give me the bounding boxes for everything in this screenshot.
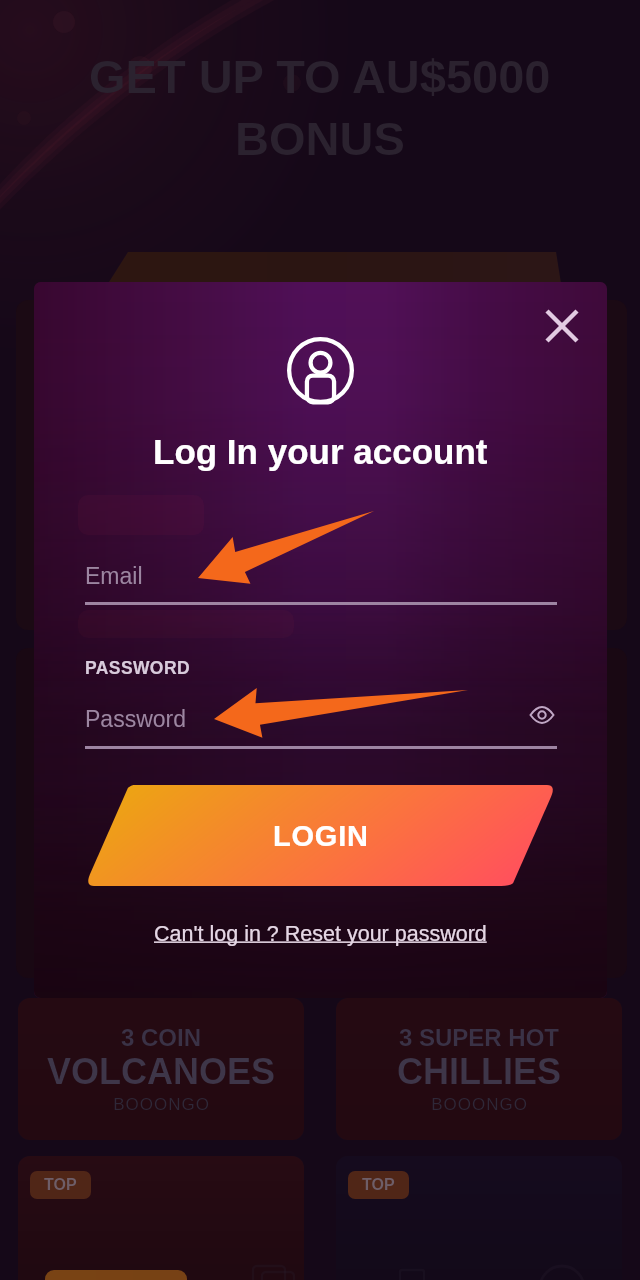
button[interactable]: LOGIN xyxy=(85,785,556,886)
staticText: 3 SUPER HOT xyxy=(399,1024,560,1051)
button[interactable]: TOP xyxy=(336,1156,622,1280)
staticText: Log In your account xyxy=(153,432,488,471)
staticText: TOP xyxy=(44,1176,77,1194)
button[interactable]: Can't log in ? Reset your password xyxy=(34,922,607,946)
staticText: LOGIN xyxy=(273,820,369,852)
staticText: Can't log in ? Reset your password xyxy=(154,922,487,946)
button[interactable]: Close xyxy=(531,295,593,357)
staticText: Email xyxy=(85,563,143,589)
staticText: PASSWORD xyxy=(85,658,190,678)
button[interactable]: Show password xyxy=(520,693,564,737)
staticText: VOLCANOES xyxy=(47,1051,276,1091)
staticText: Password xyxy=(85,706,186,732)
staticText: BONUS xyxy=(235,112,405,165)
button[interactable]: TOP xyxy=(18,1156,304,1280)
staticText: GET UP TO AU$5000 xyxy=(89,50,551,103)
staticText: TOP xyxy=(362,1176,395,1194)
staticText: BOOONGO xyxy=(113,1095,210,1114)
button[interactable]: 3 COIN xyxy=(18,998,304,1140)
staticText: 3 COIN xyxy=(121,1024,202,1051)
staticText: CHILLIES xyxy=(397,1051,562,1091)
staticText: BOOONGO xyxy=(431,1095,528,1114)
button[interactable]: 3 SUPER HOT xyxy=(336,998,622,1140)
